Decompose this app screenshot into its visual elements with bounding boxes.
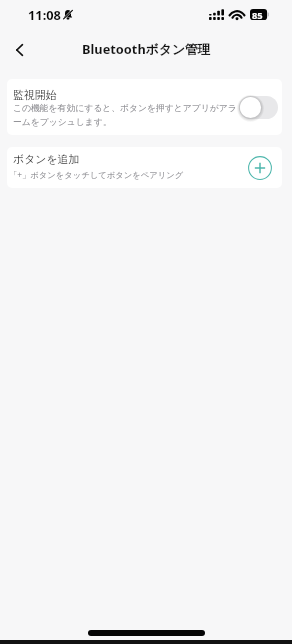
button[interactable]: 監視開始 — [238, 95, 279, 120]
staticText: Bluetoothボタン管理 — [82, 40, 211, 57]
button[interactable]: ボタンを追加 — [248, 156, 272, 180]
staticText: 監視開始 — [13, 89, 57, 103]
button[interactable]: 監視開始 — [7, 79, 282, 135]
staticText: 85 — [252, 9, 263, 20]
button[interactable]: ボタンを追加 — [7, 147, 282, 188]
staticText: 11:08 — [28, 6, 61, 23]
staticText: この機能を有効にすると、ボタンを押すとアプリがアラームをプッシュします。 — [13, 103, 240, 127]
button[interactable]: Back — [5, 36, 33, 64]
staticText: ボタンを追加 — [13, 153, 80, 167]
staticText: 「+」ボタンをタッチしてボタンをペアリング — [9, 169, 184, 180]
